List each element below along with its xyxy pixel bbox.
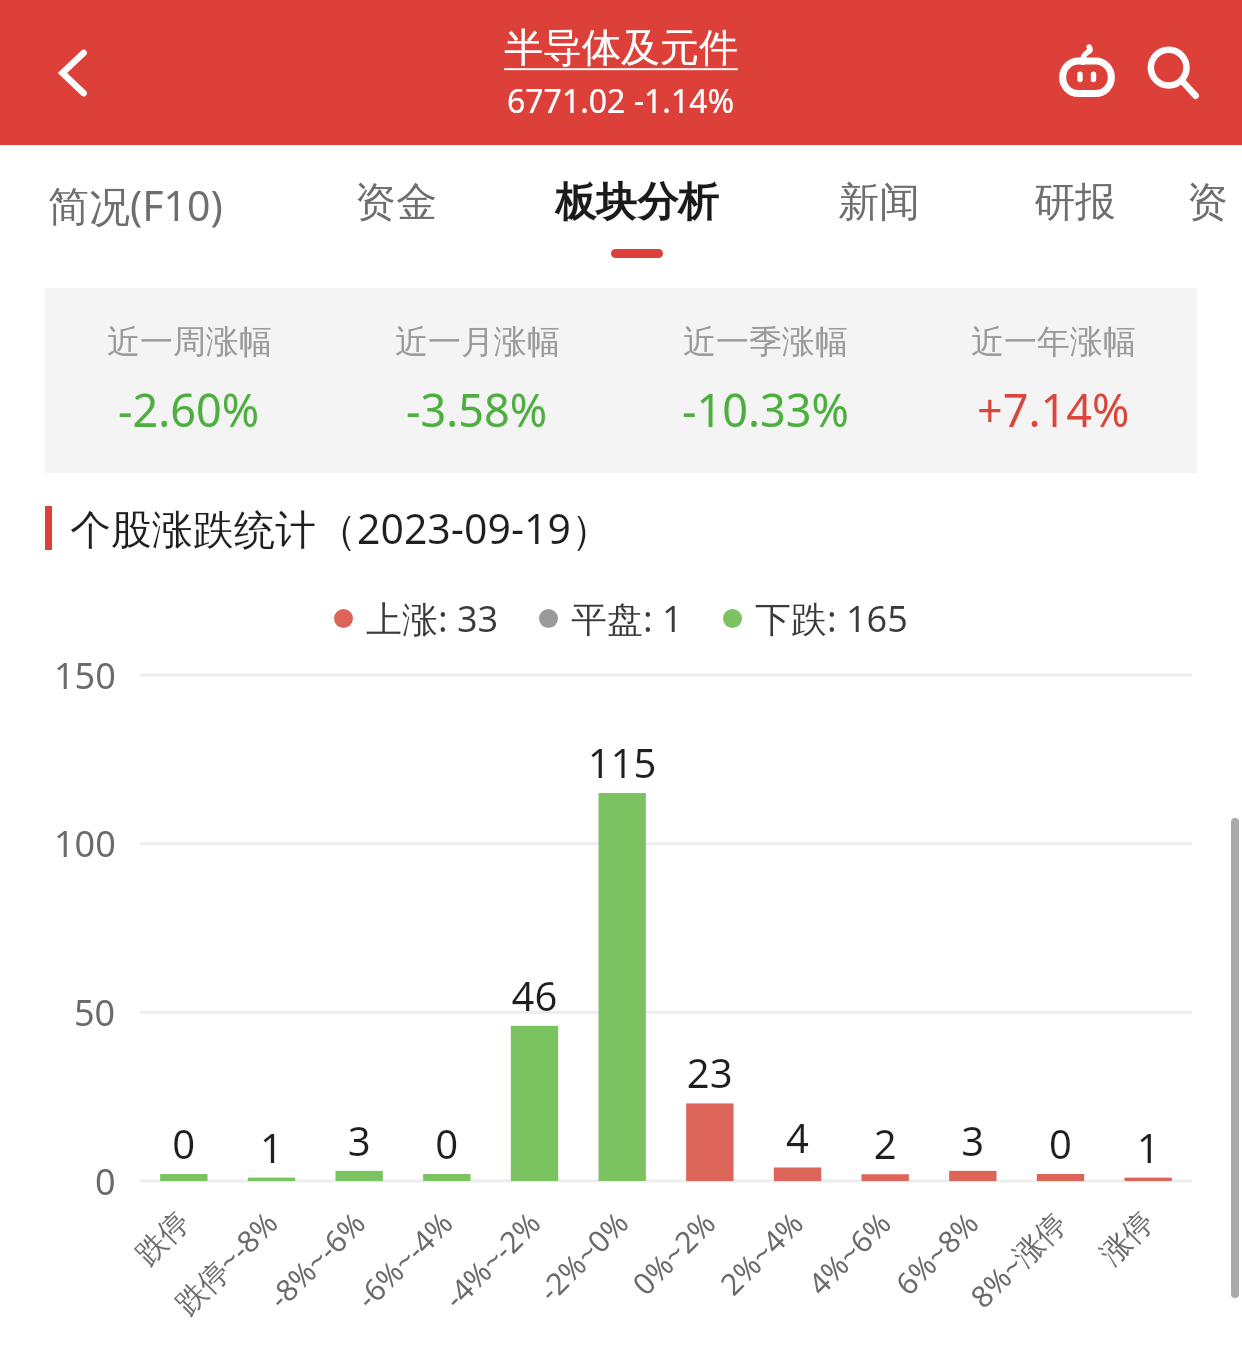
button[interactable]: 研报 [977, 145, 1173, 288]
button[interactable]: 近一周涨幅 [45, 288, 333, 473]
staticText: 资 [1187, 177, 1228, 229]
staticText: 近一月涨幅 [395, 321, 560, 363]
button[interactable]: 上涨: 33 [334, 594, 499, 643]
staticText: 近一季涨幅 [683, 321, 848, 363]
staticText: 6771.02 -1.14% [507, 79, 735, 123]
staticText: 研报 [1034, 177, 1116, 229]
button[interactable]: 近一月涨幅 [333, 288, 621, 473]
staticText: -2.60% [118, 379, 260, 440]
button[interactable]: Search [1130, 30, 1216, 116]
staticText: 简况(F10) [48, 177, 223, 233]
staticText: 资金 [355, 177, 437, 229]
staticText: 个股涨跌统计（2023-09-19） [70, 500, 613, 556]
staticText: 上涨: 33 [366, 594, 499, 643]
staticText: 近一年涨幅 [971, 321, 1136, 363]
staticText: 近一周涨幅 [107, 321, 272, 363]
button[interactable]: 资 [1173, 145, 1242, 288]
staticText: 下跌: 165 [755, 594, 908, 643]
button[interactable]: Back [38, 37, 110, 109]
staticText: +7.14% [977, 379, 1130, 440]
staticText: -3.58% [406, 379, 548, 440]
button[interactable]: 近一季涨幅 [621, 288, 909, 473]
staticText: 平盘: 1 [571, 594, 683, 643]
staticText: 新闻 [838, 177, 920, 229]
button[interactable]: 下跌: 165 [723, 594, 908, 643]
staticText: -10.33% [682, 379, 849, 440]
staticText: 半导体及元件 [504, 23, 738, 72]
button[interactable]: 近一年涨幅 [909, 288, 1197, 473]
button[interactable]: 平盘: 1 [539, 594, 683, 643]
button[interactable]: 资金 [298, 145, 493, 288]
staticText: 板块分析 [555, 177, 719, 229]
button[interactable]: 新闻 [781, 145, 977, 288]
button[interactable]: AI assistant [1044, 30, 1130, 116]
button[interactable]: 简况(F10) [0, 145, 284, 288]
button[interactable]: 板块分析 [493, 145, 781, 288]
